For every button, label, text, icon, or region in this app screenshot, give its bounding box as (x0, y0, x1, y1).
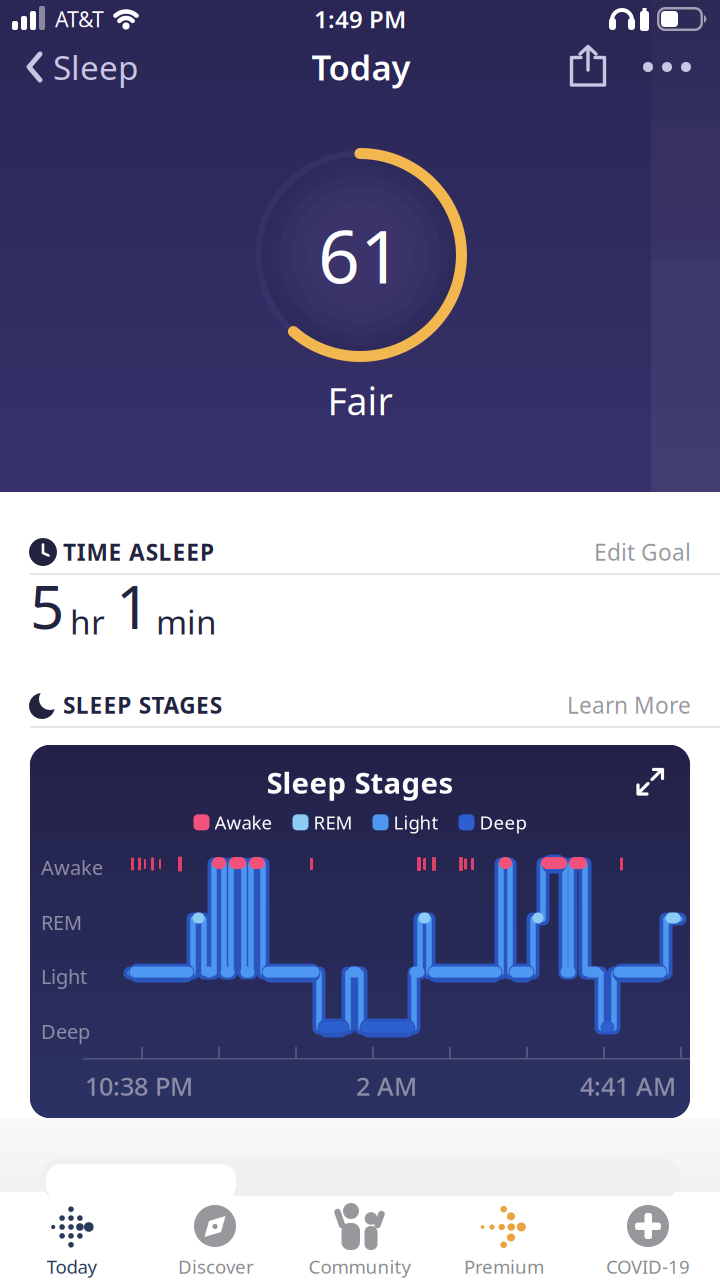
staticText: Sleep Stages (266, 763, 453, 802)
button[interactable]: Discover (144, 1196, 288, 1279)
staticText: Learn More (567, 690, 691, 720)
staticText: Awake (41, 854, 103, 881)
button[interactable]: Sleep (26, 45, 139, 89)
staticText: Deep (41, 1018, 90, 1045)
staticText: Light (393, 810, 438, 835)
staticText: 1:49 PM (314, 3, 406, 35)
button[interactable]: Edit Goal (594, 537, 691, 567)
staticText: SLEEP STAGES (63, 690, 222, 720)
staticText: hr (70, 599, 105, 644)
staticText: REM (41, 909, 82, 936)
staticText: Edit Goal (594, 537, 691, 567)
staticText: Fair (327, 376, 392, 426)
button[interactable]: Community (288, 1196, 432, 1279)
staticText: Premium (464, 1254, 544, 1279)
staticText: Today (311, 44, 410, 90)
button[interactable]: COVID-19 (576, 1196, 720, 1279)
button[interactable]: Share (568, 44, 608, 90)
button[interactable]: Expand (636, 767, 666, 797)
staticText: 2 AM (356, 1069, 417, 1103)
staticText: min (156, 599, 217, 644)
staticText: 5 (30, 566, 64, 646)
staticText: Awake (214, 810, 272, 835)
button[interactable]: Premium (432, 1196, 576, 1279)
staticText: TIME ASLEEP (63, 537, 214, 567)
staticText: Community (308, 1254, 411, 1279)
staticText: 61 (318, 206, 402, 304)
button[interactable]: Learn More (567, 690, 691, 720)
staticText: REM (313, 810, 352, 835)
staticText: 4:41 AM (580, 1069, 676, 1103)
staticText: Deep (479, 810, 526, 835)
staticText: 1 (116, 566, 150, 646)
staticText: Light (41, 963, 87, 990)
staticText: 10:38 PM (85, 1069, 193, 1103)
staticText: COVID-19 (606, 1254, 690, 1279)
staticText: AT&T (55, 5, 104, 33)
staticText: Today (46, 1254, 97, 1279)
button[interactable]: More (638, 44, 696, 90)
button[interactable]: Today (0, 1196, 144, 1279)
staticText: Sleep (53, 45, 139, 89)
staticText: Discover (178, 1254, 254, 1279)
